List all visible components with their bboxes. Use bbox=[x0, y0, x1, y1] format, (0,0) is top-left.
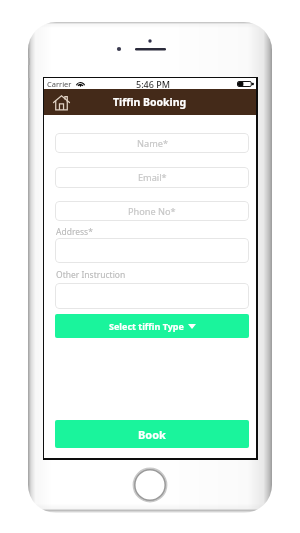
button[interactable] bbox=[55, 238, 249, 263]
staticText: Other Instruction bbox=[56, 269, 126, 281]
staticText: Name* bbox=[137, 137, 168, 150]
button[interactable]: Email* bbox=[55, 167, 249, 188]
staticText: Phone No* bbox=[128, 205, 176, 218]
staticText: Email* bbox=[138, 171, 167, 184]
staticText: 5:46 PM bbox=[136, 78, 170, 89]
button[interactable]: Book bbox=[55, 420, 249, 448]
button[interactable] bbox=[55, 283, 249, 309]
button[interactable]: Name* bbox=[55, 133, 249, 153]
staticText: Address* bbox=[56, 226, 93, 238]
button[interactable]: Phone No* bbox=[55, 201, 249, 221]
staticText: Select tiffin Type bbox=[109, 320, 184, 332]
staticText: Tiffin Booking bbox=[113, 95, 187, 109]
button[interactable]: Select tiffin Type bbox=[55, 314, 249, 338]
staticText: Carrier bbox=[47, 79, 72, 89]
staticText: Book bbox=[138, 427, 166, 442]
button[interactable]: Home bbox=[50, 91, 72, 113]
